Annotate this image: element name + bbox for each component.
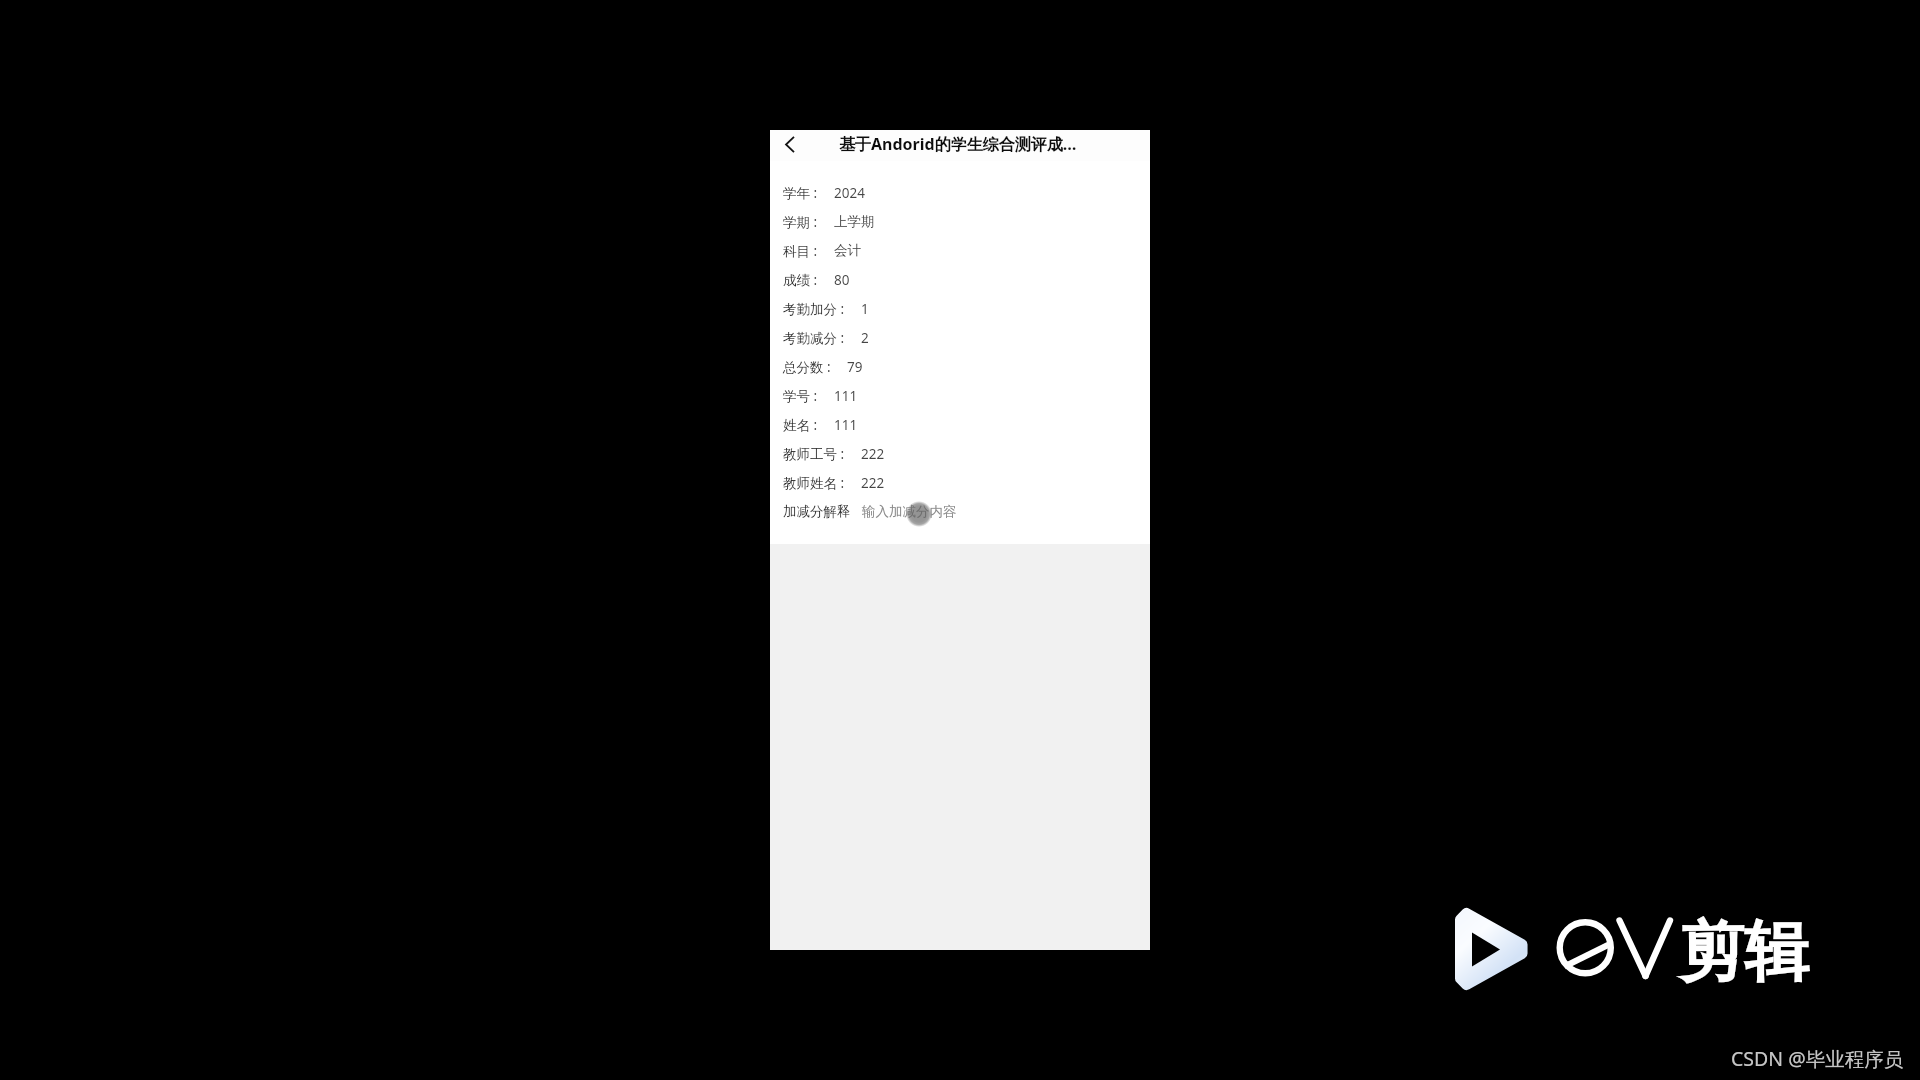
staticText: 上学期 [834,213,875,230]
staticText: 111 [834,416,858,434]
staticText: 总分数 : [783,358,831,376]
staticText: 教师姓名 : [783,474,845,492]
button[interactable]: 教师姓名 : [770,468,1150,497]
staticText: 111 [834,387,858,405]
staticText: 学号 : [783,387,818,405]
staticText: 会计 [834,242,861,259]
button[interactable]: 考勤减分 : [770,323,1150,352]
button[interactable]: 考勤加分 : [770,294,1150,323]
button[interactable]: 教师工号 : [770,439,1150,468]
staticText: 1 [861,300,869,318]
staticText: 学年 : [783,184,818,202]
staticText: 剪辑 [1679,911,1809,993]
staticText: 80 [834,271,850,289]
staticText: 输入加减分内容 [862,503,957,520]
button[interactable]: 学号 : [770,381,1150,410]
staticText: 222 [861,474,885,492]
staticText: 考勤减分 : [783,329,845,347]
staticText: 成绩 : [783,271,818,289]
button[interactable]: 科目 : [770,236,1150,265]
staticText: 基于Andorid的学生综合测评成… [839,133,1077,155]
staticText: 学期 : [783,213,818,231]
button[interactable]: 学期 : [770,207,1150,236]
staticText: 2024 [834,184,865,202]
button[interactable]: 总分数 : [770,352,1150,381]
staticText: 加减分解释 [783,503,851,520]
button[interactable]: 姓名 : [770,410,1150,439]
button[interactable]: 加减分解释 [770,497,1150,526]
staticText: 教师工号 : [783,445,845,463]
staticText: 姓名 : [783,416,818,434]
staticText: 考勤加分 : [783,300,845,318]
button[interactable]: 学年 : [770,178,1150,207]
staticText: 79 [847,358,863,376]
staticText: CSDN @毕业程序员 [1731,1045,1904,1072]
button[interactable]: Back [777,131,803,157]
staticText: 2 [861,329,869,347]
button[interactable]: 成绩 : [770,265,1150,294]
staticText: 222 [861,445,885,463]
staticText: 科目 : [783,242,818,260]
